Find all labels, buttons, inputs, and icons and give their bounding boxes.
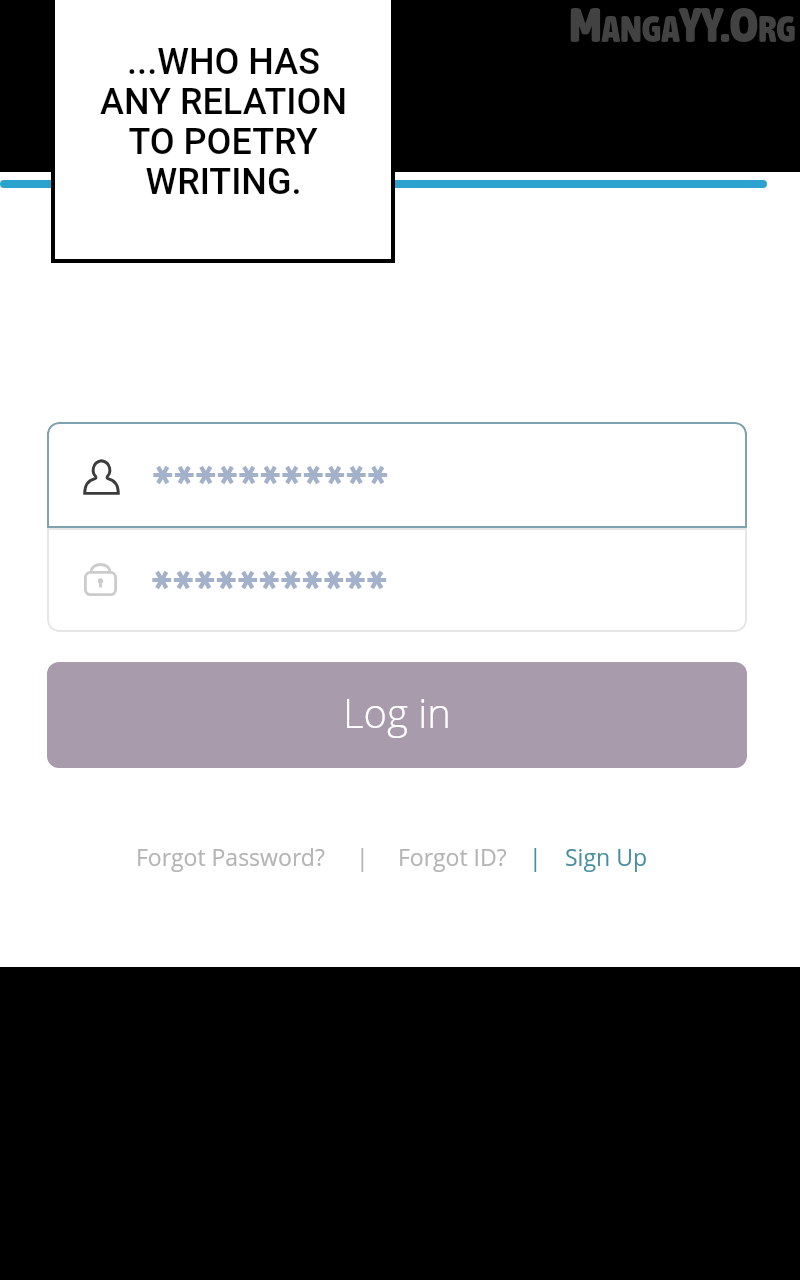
- button[interactable]: |: [529, 837, 542, 876]
- staticText: Forgot ID?: [398, 841, 507, 872]
- button[interactable]: Forgot Password?: [136, 837, 325, 876]
- staticText: |: [356, 841, 369, 872]
- button[interactable]: Password: [47, 528, 747, 632]
- staticText: MANGAYY.ORG: [569, 0, 796, 52]
- button[interactable]: Sign Up: [565, 837, 647, 876]
- staticText: Log in: [343, 685, 451, 739]
- staticText: ...WHO HAS: [127, 41, 320, 81]
- staticText: Sign Up: [565, 841, 647, 872]
- button[interactable]: Log in: [47, 662, 747, 768]
- staticText: WRITING.: [145, 161, 302, 201]
- other: Username: [83, 458, 120, 495]
- button[interactable]: |: [356, 837, 369, 876]
- other: Password: [84, 560, 117, 596]
- staticText: |: [529, 841, 542, 872]
- staticText: Forgot Password?: [136, 841, 325, 872]
- staticText: ANY RELATION: [100, 81, 347, 121]
- staticText: TO POETRY: [128, 121, 318, 161]
- button[interactable]: Forgot ID?: [398, 837, 507, 876]
- button[interactable]: Username: [47, 422, 747, 528]
